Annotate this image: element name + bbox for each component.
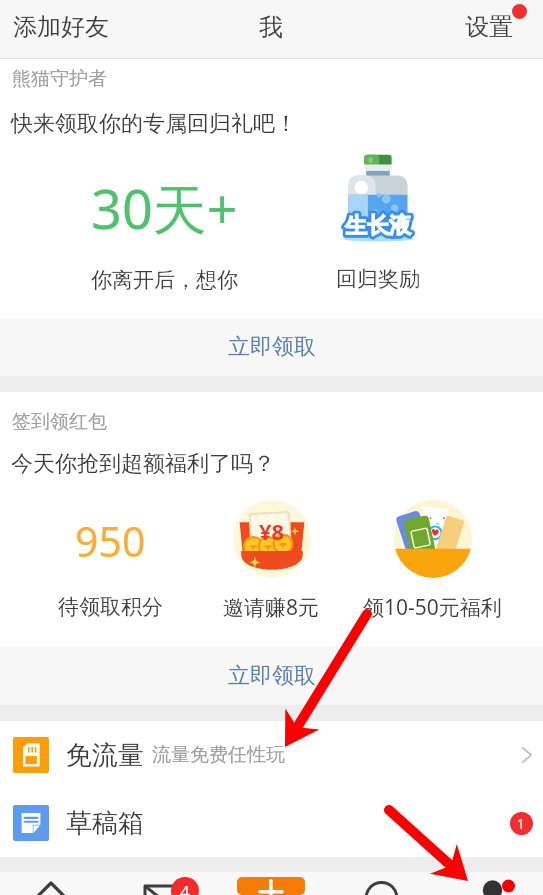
button[interactable]: 添加好友 bbox=[0, 0, 259, 59]
staticText: 今天你抢到超额福利了吗？ bbox=[11, 450, 275, 478]
staticText: 草稿箱 bbox=[66, 807, 144, 840]
staticText: 设置 bbox=[465, 12, 513, 42]
staticText: 950 bbox=[75, 513, 146, 569]
button[interactable]: Profile bbox=[434, 872, 543, 895]
staticText: 生长液 bbox=[345, 212, 411, 240]
staticText: 熊猫守护者 bbox=[12, 67, 107, 91]
button[interactable]: 设置 bbox=[283, 0, 543, 59]
staticText: 领10-50元福利 bbox=[363, 593, 502, 622]
button[interactable]: 立即领取 bbox=[0, 318, 543, 376]
staticText: 立即领取 bbox=[228, 662, 316, 690]
button[interactable]: 立即领取 bbox=[0, 646, 543, 705]
staticText: 流量免费任性玩 bbox=[152, 743, 285, 767]
staticText: 你离开后，想你 bbox=[91, 267, 238, 293]
button[interactable]: Post bbox=[216, 872, 325, 895]
staticText: 邀请赚8元 bbox=[223, 593, 320, 622]
button[interactable]: 免流量 bbox=[0, 721, 543, 789]
staticText: 生长液 bbox=[345, 212, 411, 240]
staticText: 立即领取 bbox=[228, 333, 316, 361]
staticText: 回归奖励 bbox=[336, 266, 420, 292]
staticText: 我 bbox=[259, 12, 283, 42]
staticText: 快来领取你的专属回归礼吧！ bbox=[11, 110, 297, 138]
staticText: 待领取积分 bbox=[58, 594, 163, 620]
staticText: ¥8 bbox=[259, 516, 285, 546]
button[interactable]: Home bbox=[0, 872, 108, 895]
button[interactable]: 草稿箱 bbox=[0, 789, 543, 857]
button[interactable]: Messages bbox=[108, 872, 216, 895]
staticText: 30天+ bbox=[91, 171, 238, 245]
staticText: 1 bbox=[517, 814, 526, 833]
button[interactable]: Discover bbox=[325, 872, 434, 895]
staticText: 免流量 bbox=[66, 739, 144, 772]
staticText: 签到领红包 bbox=[12, 410, 107, 434]
staticText: 4 bbox=[180, 880, 190, 895]
staticText: 添加好友 bbox=[13, 12, 109, 42]
